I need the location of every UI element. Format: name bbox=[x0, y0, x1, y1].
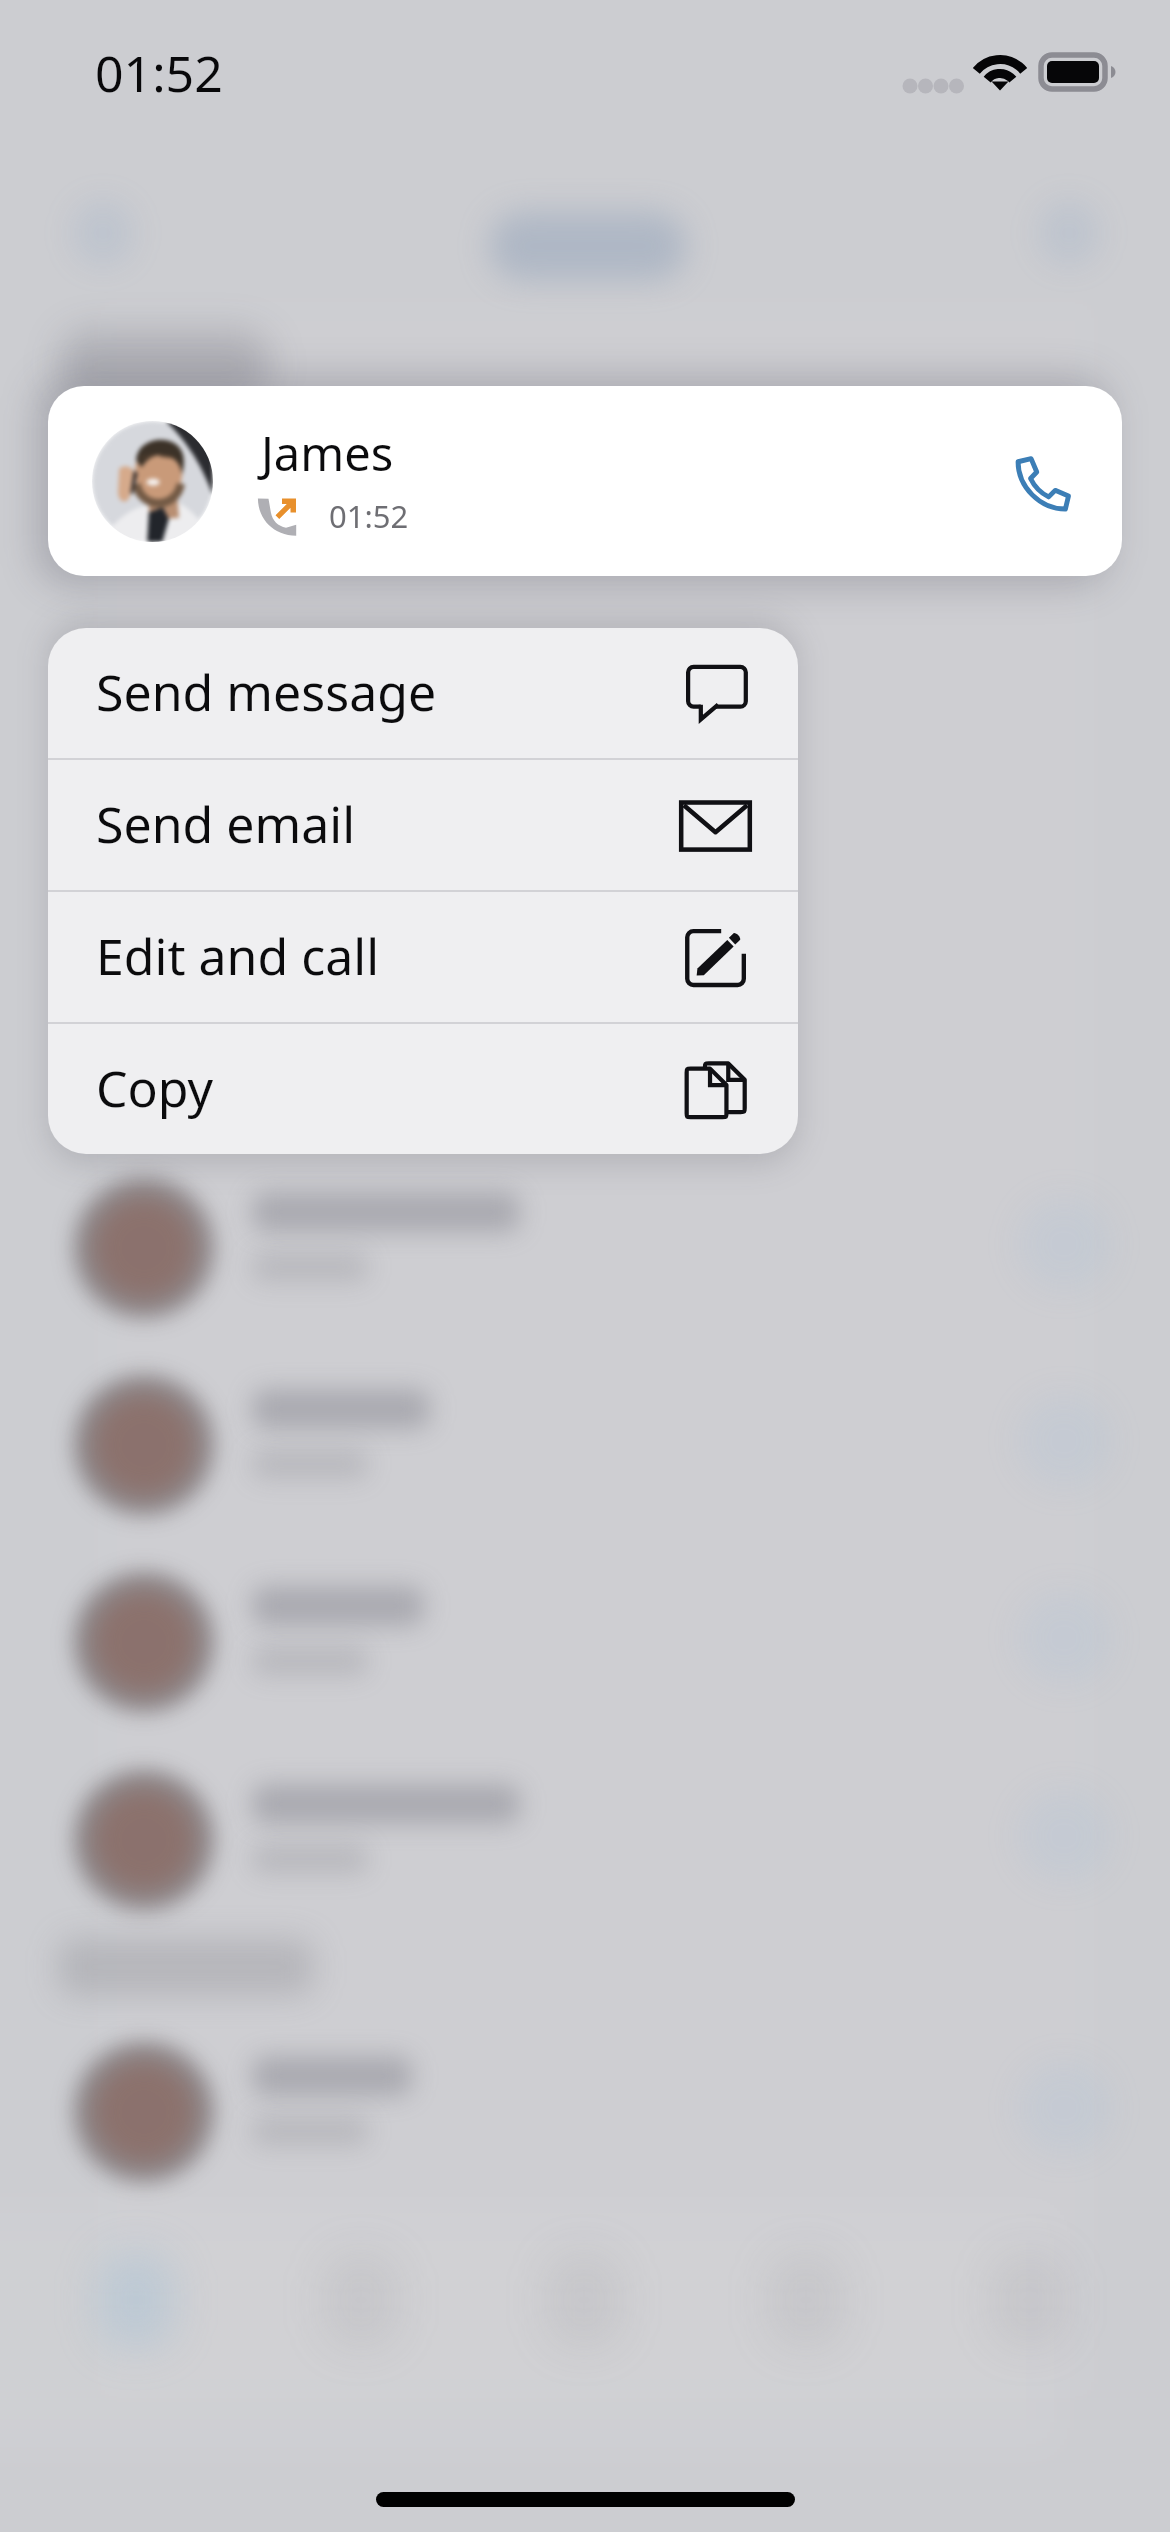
button[interactable]: Send message bbox=[48, 628, 798, 758]
staticText: Edit and call bbox=[96, 922, 380, 990]
button[interactable]: James bbox=[48, 386, 1122, 576]
staticText: Send message bbox=[96, 658, 437, 726]
staticText: Copy bbox=[96, 1054, 214, 1122]
staticText: James bbox=[261, 421, 394, 485]
staticText: 01:52 bbox=[95, 39, 223, 107]
staticText: Send email bbox=[96, 790, 356, 858]
button[interactable]: Copy bbox=[48, 1024, 798, 1154]
button[interactable]: Call bbox=[967, 415, 1100, 548]
button[interactable]: Edit and call bbox=[48, 892, 798, 1022]
button[interactable]: Send email bbox=[48, 760, 798, 890]
staticText: 01:52 bbox=[329, 495, 409, 537]
